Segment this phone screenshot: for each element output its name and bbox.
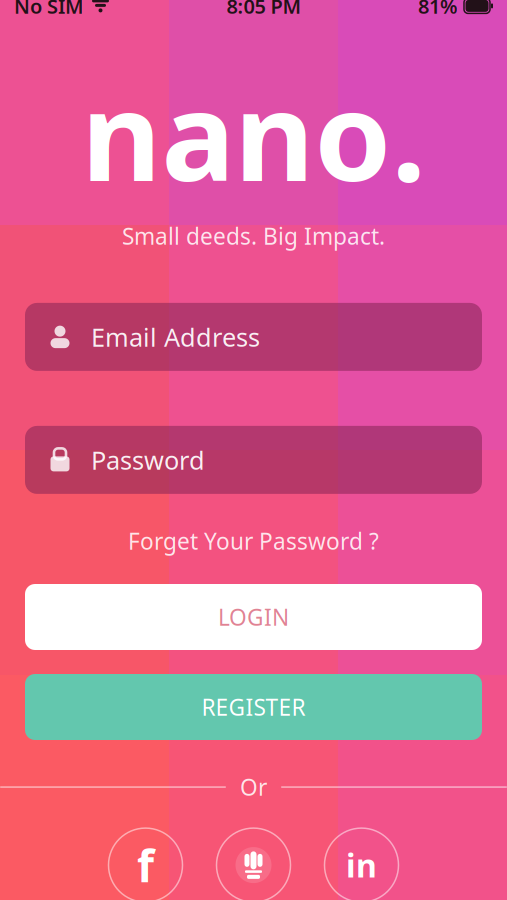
button[interactable]: LOGIN xyxy=(25,584,482,650)
staticText: Forget Your Password ? xyxy=(128,526,379,556)
staticText: No SIM xyxy=(14,0,84,19)
button[interactable]: Sign in with Facebook xyxy=(108,828,182,900)
button[interactable]: REGISTER xyxy=(25,674,482,740)
staticText: Small deeds. Big Impact. xyxy=(122,221,385,251)
button[interactable]: Email Address xyxy=(25,303,482,371)
button[interactable]: Forget Your Password ? xyxy=(114,520,393,562)
button[interactable]: Sign in with LinkedIn xyxy=(324,828,398,900)
staticText: REGISTER xyxy=(201,692,305,722)
staticText: nano. xyxy=(81,52,425,215)
staticText: Or xyxy=(240,772,267,802)
staticText: Email Address xyxy=(91,320,260,354)
button[interactable]: Password xyxy=(25,426,482,494)
staticText: f xyxy=(137,836,154,894)
staticText: 8:05 PM xyxy=(226,0,301,19)
staticText: Password xyxy=(91,443,205,477)
staticText: LOGIN xyxy=(218,602,289,632)
staticText: in xyxy=(346,844,377,886)
staticText: 81% xyxy=(418,0,458,19)
button[interactable]: Sign in with Scouts xyxy=(216,828,290,900)
